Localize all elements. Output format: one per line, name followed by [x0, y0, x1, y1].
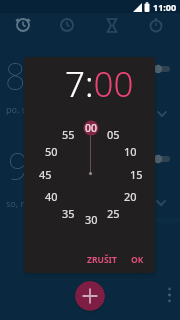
staticText: 8:30 — [5, 52, 75, 101]
button[interactable]: 45 — [34, 167, 56, 181]
button[interactable]: ZRUŠIT — [76, 251, 128, 269]
staticText: 11:00 — [153, 1, 177, 13]
button[interactable]: 25 — [102, 206, 124, 220]
button[interactable]: 00 — [80, 121, 102, 135]
staticText: 35 — [62, 206, 75, 220]
staticText: so, ne — [6, 197, 32, 209]
button[interactable] — [164, 284, 175, 306]
button[interactable]: 30 — [80, 212, 102, 226]
button[interactable]: 05 — [102, 127, 124, 141]
button[interactable]: 10 — [119, 144, 141, 158]
button[interactable] — [153, 153, 173, 165]
button[interactable] — [143, 11, 172, 39]
staticText: 15 — [130, 167, 143, 181]
button[interactable] — [8, 11, 37, 39]
button[interactable]: 40 — [40, 189, 62, 203]
staticText: OK — [131, 254, 144, 266]
button[interactable] — [75, 281, 105, 311]
staticText: po, út, st, čt, pá — [6, 103, 71, 115]
staticText: 9:00 — [8, 142, 78, 191]
staticText: 40 — [45, 189, 58, 203]
staticText: 45 — [39, 167, 52, 181]
button[interactable]: 50 — [40, 144, 62, 158]
staticText: ZRUŠIT — [87, 254, 117, 266]
staticText: 10 — [124, 144, 137, 158]
staticText: 25 — [107, 206, 120, 220]
staticText: 50 — [45, 144, 58, 158]
button[interactable]: 20 — [119, 189, 141, 203]
staticText: 55 — [62, 127, 75, 141]
button[interactable]: OK — [124, 251, 150, 269]
button[interactable] — [153, 63, 173, 75]
staticText: 7:00 — [65, 60, 134, 104]
button[interactable]: 15 — [125, 167, 147, 181]
staticText: 00 — [85, 121, 98, 135]
button[interactable] — [98, 11, 127, 39]
staticText: 05 — [107, 127, 120, 141]
button[interactable]: 35 — [57, 206, 79, 220]
button[interactable] — [53, 11, 82, 39]
staticText: 30 — [85, 212, 98, 226]
button[interactable]: 55 — [57, 127, 79, 141]
staticText: 20 — [124, 189, 137, 203]
